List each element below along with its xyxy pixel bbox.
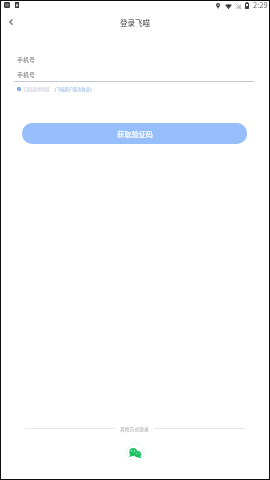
staticText: 手机号 (17, 55, 36, 64)
staticText: 2:29 (253, 0, 268, 10)
staticText: 手机号 (17, 70, 36, 79)
button[interactable]: Back (5, 16, 16, 27)
button[interactable]: 获取验证码 (22, 123, 247, 144)
staticText: 登录飞喵 (120, 17, 150, 28)
button[interactable]: 《飞喵用户服务协议》 (52, 86, 94, 92)
staticText: 已阅读并同意 (24, 86, 50, 92)
staticText: 其他方式登录 (120, 425, 149, 432)
staticText: 获取验证码 (117, 129, 153, 139)
button[interactable]: WeChat login (126, 443, 145, 462)
